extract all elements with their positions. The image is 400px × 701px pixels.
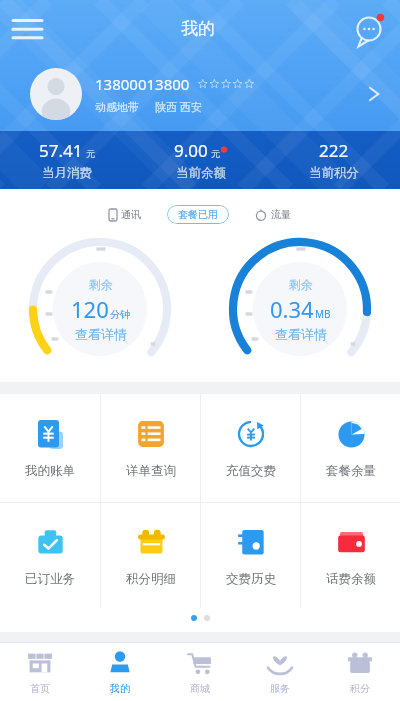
staticText: 交费历史 [226, 571, 276, 587]
staticText: 元 [211, 148, 220, 159]
staticText: 当月消费 [42, 165, 92, 181]
button[interactable]: 首页 [0, 643, 80, 701]
button[interactable]: 57.41 [0, 131, 134, 189]
staticText: 充值交费 [226, 463, 276, 479]
button[interactable]: 套餐已用 [167, 205, 229, 224]
staticText: 查看详情 [75, 326, 127, 342]
staticText: 动感地带 [95, 100, 139, 114]
button[interactable]: Messages [342, 0, 400, 56]
button[interactable]: 积分明细 [101, 503, 200, 608]
staticText: 元 [86, 148, 95, 159]
button[interactable]: 套餐余量 [301, 394, 400, 502]
button[interactable]: 我的账单 [0, 394, 100, 502]
staticText: 话费余额 [326, 571, 376, 587]
staticText: 222 [319, 139, 349, 162]
staticText: 详单查询 [126, 463, 176, 479]
button[interactable]: 剩余 [0, 236, 200, 382]
staticText: 剩余 [89, 277, 113, 292]
staticText: 13800013800 [95, 74, 190, 94]
button[interactable]: 交费历史 [201, 503, 300, 608]
staticText: 当前余额 [176, 165, 226, 181]
button[interactable]: 通讯 [109, 208, 141, 221]
staticText: 0.34 [270, 294, 314, 324]
button[interactable]: 积分 [320, 643, 400, 701]
staticText: 套餐已用 [178, 208, 218, 221]
button[interactable]: 9.00 [134, 131, 267, 189]
staticText: 当前积分 [309, 165, 359, 181]
staticText: 通讯 [121, 208, 141, 221]
staticText: 分钟 [110, 308, 130, 321]
staticText: 已订业务 [25, 571, 75, 587]
staticText: 套餐余量 [326, 463, 376, 479]
staticText: 9.00 [174, 139, 208, 162]
staticText: 积分 [350, 682, 370, 695]
button[interactable]: 话费余额 [301, 503, 400, 608]
button[interactable]: 222 [267, 131, 400, 189]
button[interactable]: 我的 [80, 643, 160, 701]
button[interactable]: 详单查询 [101, 394, 200, 502]
button[interactable]: Menu [0, 0, 54, 56]
staticText: 120 [71, 294, 109, 324]
staticText: 流量 [271, 208, 291, 221]
staticText: 商城 [190, 682, 210, 695]
staticText: MB [315, 307, 331, 321]
staticText: 查看详情 [275, 326, 327, 342]
button[interactable]: 剩余 [200, 236, 400, 382]
staticText: 我的 [110, 682, 130, 695]
button[interactable]: 服务 [240, 643, 320, 701]
staticText: 我的账单 [25, 463, 75, 479]
staticText: 57.41 [39, 139, 83, 162]
button[interactable]: 13800013800 [0, 56, 400, 131]
staticText: 陕西 西安 [155, 99, 202, 114]
staticText: 服务 [270, 682, 290, 695]
staticText: 我的 [181, 18, 215, 39]
staticText: 剩余 [289, 277, 313, 292]
button[interactable]: 商城 [160, 643, 240, 701]
staticText: 首页 [30, 682, 50, 695]
button[interactable]: 充值交费 [201, 394, 300, 502]
staticText: 积分明细 [126, 571, 176, 587]
button[interactable]: 已订业务 [0, 503, 100, 608]
button[interactable]: 流量 [255, 208, 291, 221]
